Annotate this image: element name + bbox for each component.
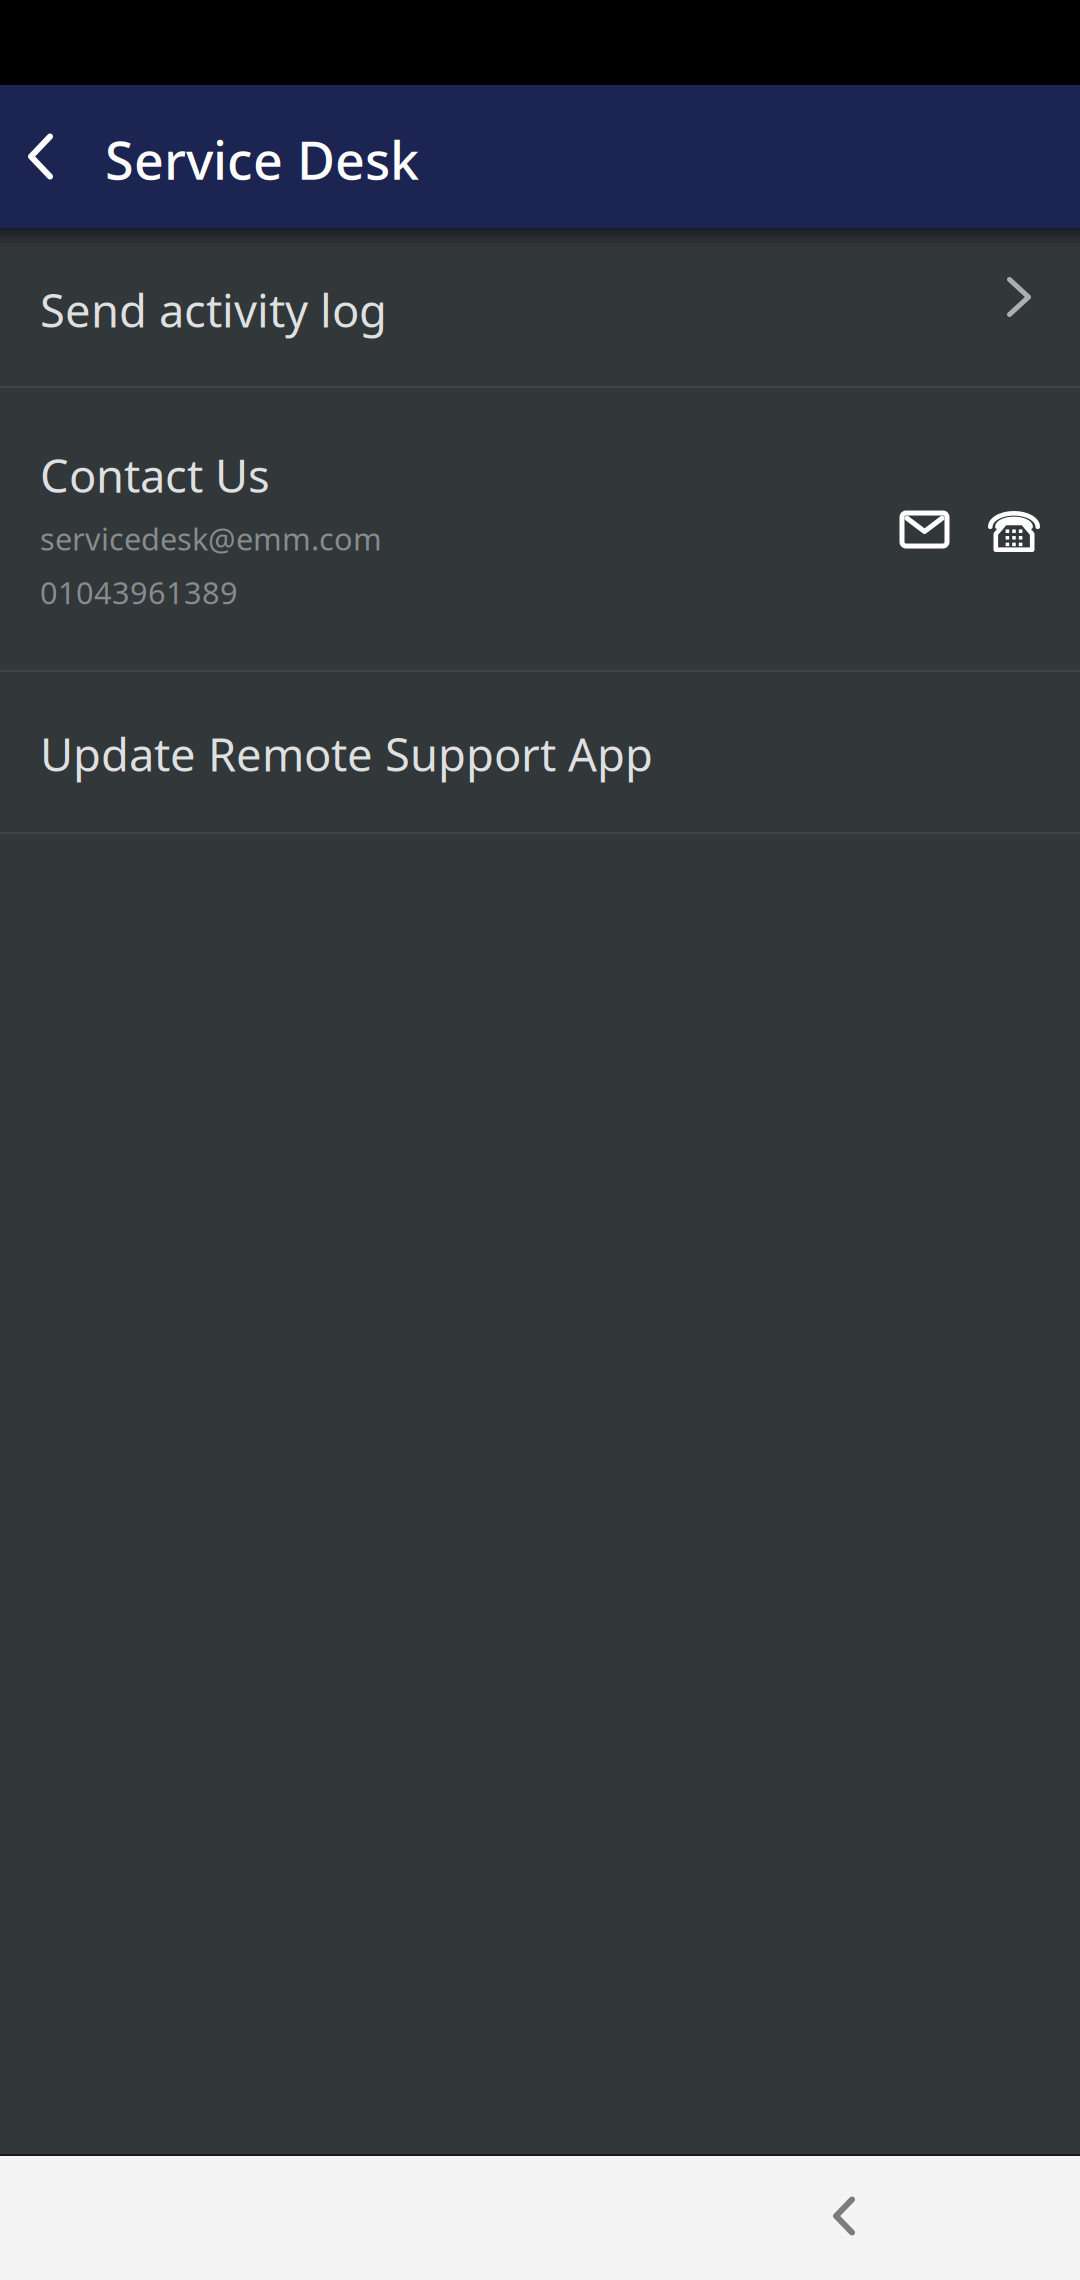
button[interactable]: Call service desk (988, 507, 1040, 552)
staticText: 01043961389 (40, 572, 238, 613)
button[interactable]: Back (782, 2156, 906, 2280)
button[interactable]: Back (0, 85, 81, 228)
button[interactable]: Email service desk (902, 513, 947, 546)
staticText: Service Desk (105, 125, 419, 194)
button[interactable]: Update Remote Support App (0, 672, 1080, 832)
staticText: Contact Us (40, 445, 270, 505)
staticText: servicedesk@emm.com (40, 518, 382, 559)
staticText: Update Remote Support App (40, 724, 653, 784)
button[interactable]: Send activity log (0, 228, 1080, 386)
staticText: Send activity log (40, 280, 387, 340)
